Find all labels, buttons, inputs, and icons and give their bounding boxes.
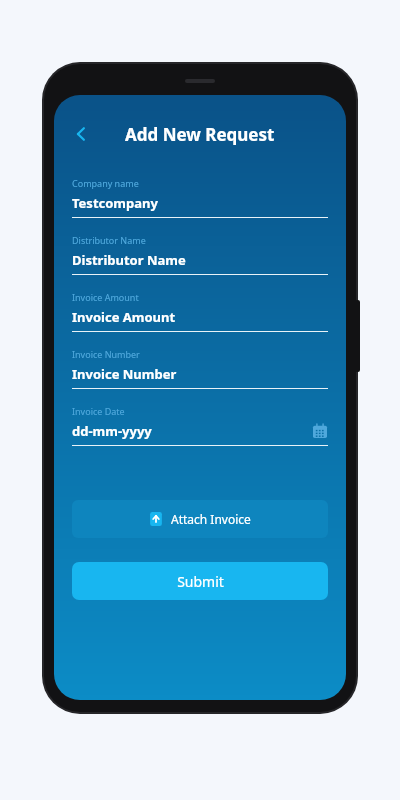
staticText: Invoice Number bbox=[72, 348, 140, 360]
staticText: dd-mm-yyyy bbox=[72, 422, 152, 440]
staticText: Add New Request bbox=[125, 123, 275, 146]
staticText: Company name bbox=[72, 177, 139, 189]
staticText: Invoice Amount bbox=[72, 308, 176, 326]
button[interactable]: Invoice Amount bbox=[72, 291, 328, 348]
button[interactable]: Company name bbox=[72, 177, 328, 234]
button[interactable]: Back bbox=[64, 117, 98, 151]
staticText: Attach Invoice bbox=[171, 511, 251, 527]
staticText: Distributor Name bbox=[72, 234, 146, 246]
other: Pick date bbox=[312, 423, 328, 439]
staticText: Submit bbox=[177, 572, 224, 591]
button[interactable]: Invoice Number bbox=[72, 348, 328, 405]
staticText: Testcompany bbox=[72, 194, 158, 212]
staticText: Invoice Amount bbox=[72, 291, 139, 303]
staticText: Distributor Name bbox=[72, 251, 186, 269]
staticText: Invoice Date bbox=[72, 405, 125, 417]
button[interactable]: Invoice Date bbox=[72, 405, 328, 462]
staticText: Invoice Number bbox=[72, 365, 177, 383]
button[interactable]: Submit bbox=[72, 562, 328, 600]
button[interactable]: Attach Invoice bbox=[72, 500, 328, 538]
button[interactable]: Distributor Name bbox=[72, 234, 328, 291]
